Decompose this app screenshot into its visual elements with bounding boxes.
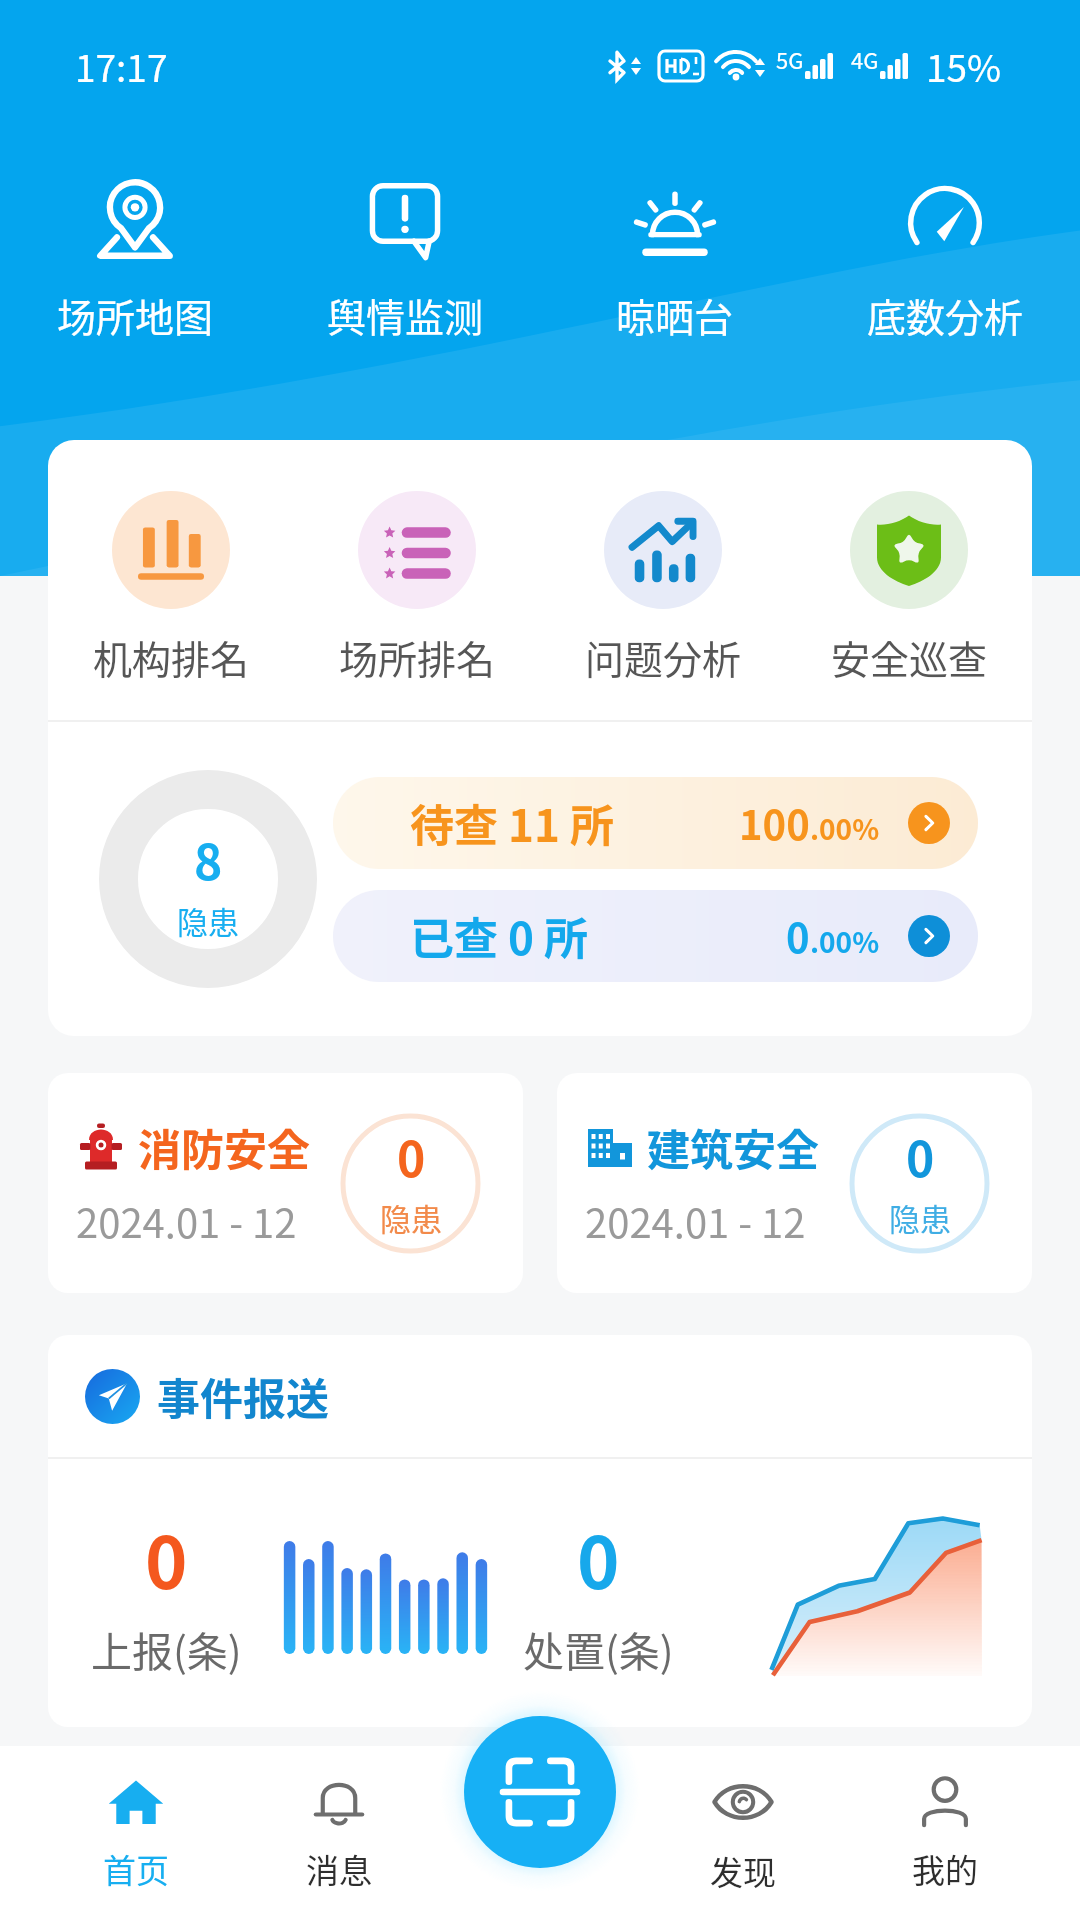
staticText: 15% [926,39,1002,93]
button[interactable]: 扫一扫 [464,1716,616,1868]
staticText: 事件报送 [157,1365,329,1427]
staticText: 隐患 [889,1195,951,1240]
button[interactable]: 问题分析 [540,491,786,685]
staticText: 上报(条) [91,1619,242,1678]
staticText: 100 [739,794,810,852]
staticText: 隐患 [380,1195,442,1240]
button[interactable]: 场所排名 [294,491,540,685]
button[interactable]: 舆情监测 [270,177,540,343]
staticText: 处置(条) [523,1619,674,1678]
staticText: 0 [145,1505,188,1609]
button[interactable]: 安全巡查 [786,491,1032,685]
staticText: 0 [786,907,810,965]
staticText: 17:17 [75,39,168,93]
button[interactable]: 建筑安全 [557,1073,1032,1293]
staticText: 舆情监测 [327,287,484,343]
staticText: 5G [776,43,804,75]
staticText: 待查 11 所 [410,791,614,855]
staticText: 安全巡查 [831,629,988,685]
button[interactable]: 晾晒台 [540,177,810,343]
button[interactable]: 机构排名 [48,491,294,685]
staticText: 8 [194,824,223,894]
staticText: 已查 0 所 [410,904,588,968]
staticText: 机构排名 [93,629,250,685]
button[interactable]: 底数分析 [810,177,1080,343]
staticText: 首页 [103,1845,169,1893]
staticText: 0 [906,1121,935,1191]
staticText: 晾晒台 [616,287,734,343]
staticText: 消息 [306,1845,372,1893]
staticText: 建筑安全 [647,1116,819,1178]
staticText: 0 [397,1121,426,1191]
staticText: 我的 [912,1845,978,1893]
staticText: 发现 [710,1847,776,1895]
staticText: .00% [810,808,880,849]
staticText: 4G [851,43,879,75]
button[interactable]: 待查 11 所 [333,777,978,869]
staticText: 2024.01 - 12 [76,1192,297,1250]
button[interactable]: 我的 [844,1773,1046,1893]
button[interactable]: 消防安全 [48,1073,523,1293]
button[interactable]: 首页 [34,1773,237,1893]
staticText: 底数分析 [867,287,1024,343]
staticText: 隐患 [177,898,239,943]
staticText: 场所排名 [339,629,496,685]
button[interactable]: 发现 [642,1771,844,1895]
button[interactable]: 事件报送 [85,1335,1032,1457]
staticText: 2024.01 - 12 [585,1192,806,1250]
staticText: 消防安全 [138,1116,310,1178]
staticText: 问题分析 [585,629,742,685]
button[interactable]: 已查 0 所 [333,890,978,982]
button[interactable]: 场所地图 [0,177,270,343]
staticText: 场所地图 [57,287,214,343]
staticText: 0 [577,1505,620,1609]
staticText: .00% [810,921,880,962]
button[interactable]: 消息 [237,1773,440,1893]
